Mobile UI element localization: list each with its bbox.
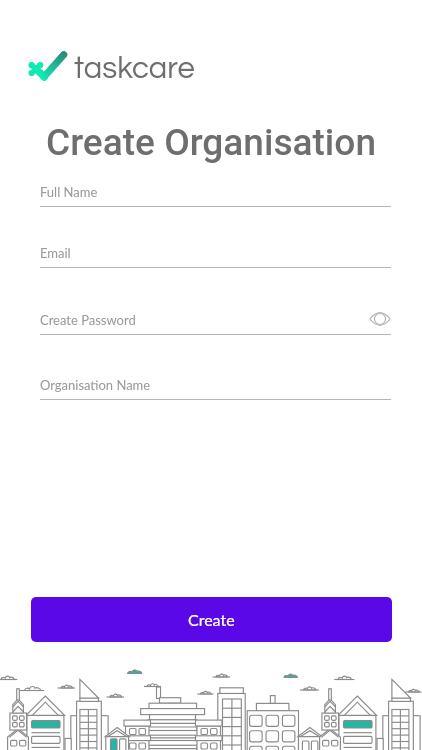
staticText: Create Organisation <box>0 121 422 164</box>
staticText: Organisation Name <box>40 377 151 393</box>
button[interactable]: Show password <box>368 309 392 329</box>
button[interactable]: Create <box>31 597 392 642</box>
staticText: Full Name <box>40 184 98 200</box>
staticText: taskcare <box>74 53 195 85</box>
staticText: Create <box>188 610 235 629</box>
staticText: Create Password <box>40 312 136 328</box>
staticText: Email <box>40 245 71 261</box>
